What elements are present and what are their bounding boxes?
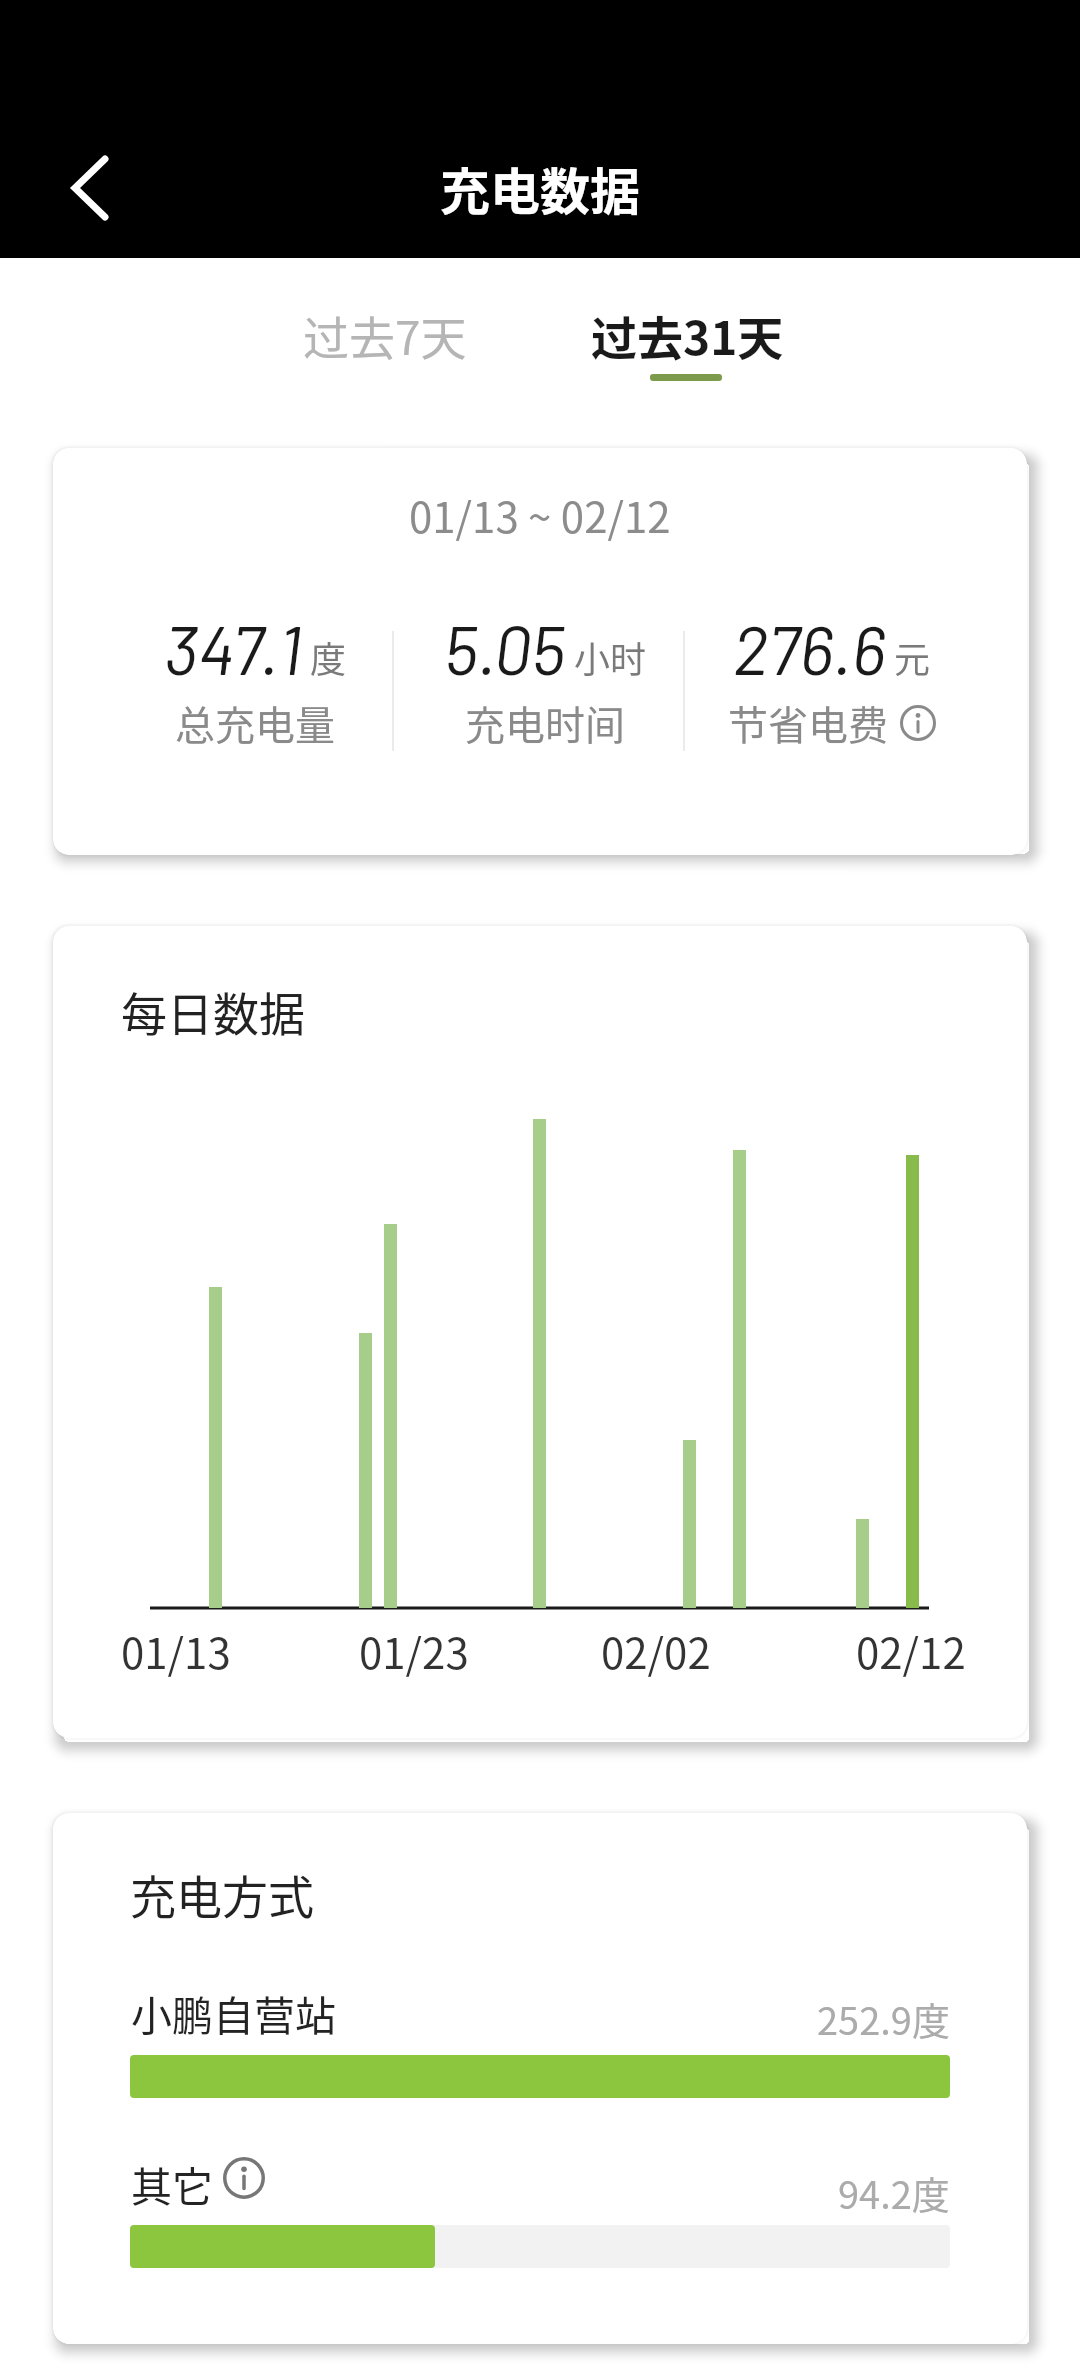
staticText: 02/02 [601, 1620, 711, 1681]
staticText: 其它 [131, 2154, 213, 2213]
staticText: 过去31天 [591, 302, 784, 369]
staticText: 充电数据 [440, 152, 640, 224]
staticText: 过去7天 [303, 302, 467, 369]
staticText: 节省电费 [728, 694, 888, 752]
staticText: 252.9度 [817, 1991, 950, 2046]
staticText: 元 [894, 631, 931, 683]
staticText: 02/12 [856, 1620, 966, 1681]
staticText: 每日数据 [121, 978, 305, 1045]
staticText: 276.6 [733, 607, 886, 689]
staticText: 01/13 [121, 1620, 231, 1681]
button[interactable] [130, 2225, 950, 2268]
staticText: 小鹏自营站 [131, 1983, 336, 2042]
staticText: 度 [310, 631, 347, 683]
staticText: 5.05 [444, 607, 566, 689]
staticText: 01/13 ~ 02/12 [409, 484, 671, 545]
staticText: 01/23 [359, 1620, 469, 1681]
staticText: 94.2度 [838, 2165, 950, 2220]
button[interactable]: 过去7天 [285, 280, 485, 390]
staticText: 总充电量 [175, 694, 335, 752]
button[interactable] [44, 140, 134, 236]
staticText: 充电时间 [465, 694, 625, 752]
button[interactable]: 过去31天 [585, 280, 789, 390]
button[interactable] [223, 2157, 265, 2199]
staticText: 小时 [574, 631, 647, 683]
staticText: 充电方式 [130, 1861, 314, 1928]
staticText: 347.1 [164, 607, 302, 689]
